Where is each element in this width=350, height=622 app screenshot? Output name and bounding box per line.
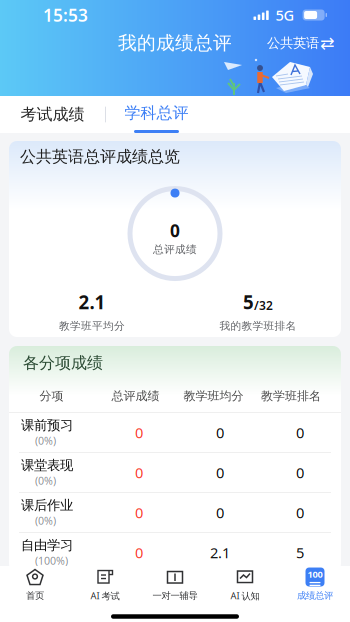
button[interactable]: AI 考试 [70,564,140,604]
staticText: /32 [254,297,273,313]
staticText: 2.1 [78,290,105,314]
staticText: 15:53 [43,3,88,26]
staticText: 总评成绩 [153,243,197,256]
button[interactable]: 公共英语 [267,29,335,57]
staticText: 0 [216,423,224,442]
button[interactable]: 一对一辅导 [140,564,210,604]
staticText: ⇄ [320,33,335,53]
button[interactable]: 学科总评 [106,96,207,133]
staticText: 首页 [26,590,44,601]
button[interactable]: 100 [280,564,350,604]
staticText: 自由学习 [21,537,73,554]
staticText: AI 认知 [230,589,259,602]
staticText: 0 [135,503,143,522]
staticText: 总评成绩 [111,389,159,403]
staticText: 0 [135,543,143,562]
staticText: 各分项成绩 [23,353,103,373]
staticText: 分项 [39,389,63,403]
staticText: 5G [276,5,295,25]
staticText: 公共英语 [267,35,319,51]
staticText: 5 [296,543,304,562]
staticText: 我的教学班排名 [219,319,296,332]
staticText: 成绩总评 [297,590,333,601]
staticText: 2.1 [210,543,230,562]
staticText: 我的成绩总评 [118,31,232,54]
staticText: 0 [216,503,224,522]
staticText: 学科总评 [124,103,188,123]
staticText: AI 考试 [90,589,119,602]
staticText: 0 [216,463,224,482]
staticText: 0 [170,219,180,242]
staticText: (0%) [35,474,56,488]
staticText: 0 [296,423,304,442]
button[interactable]: AI 认知 [210,564,280,604]
staticText: 课前预习 [21,417,73,434]
staticText: 课堂表现 [21,457,73,474]
staticText: 课后作业 [21,497,73,514]
staticText: 教学班平均分 [59,319,125,332]
staticText: 教学班均分 [183,389,243,403]
button[interactable]: 首页 [0,564,70,604]
staticText: (0%) [35,434,56,448]
staticText: 0 [296,503,304,522]
staticText: (100%) [35,554,68,568]
staticText: 考试成绩 [20,105,84,124]
staticText: 0 [135,463,143,482]
staticText: 公共英语总评成绩总览 [20,147,180,166]
staticText: 0 [135,423,143,442]
button[interactable]: 考试成绩 [0,96,105,133]
staticText: 教学班排名 [261,389,321,403]
staticText: 100 [307,568,322,580]
staticText: (0%) [35,514,56,528]
staticText: 一对一辅导 [152,590,197,601]
staticText: 0 [296,463,304,482]
staticText: 5 [243,290,254,314]
